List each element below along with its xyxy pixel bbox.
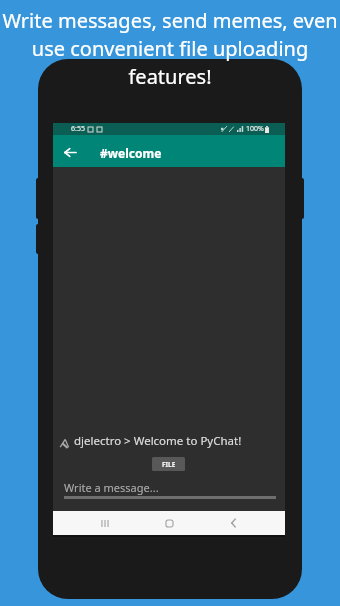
button[interactable]: FILE xyxy=(152,457,185,471)
button[interactable]: Back xyxy=(221,511,245,535)
button[interactable]: Home xyxy=(157,511,181,535)
staticText: Write a message... xyxy=(64,480,159,495)
staticText: #welcome xyxy=(100,145,162,161)
staticText: Write messages, send memes, even use con… xyxy=(0,7,340,90)
button[interactable]: Back xyxy=(53,135,285,167)
button[interactable]: Write a message... xyxy=(64,480,276,499)
button[interactable]: Back xyxy=(61,143,79,161)
staticText: 100% xyxy=(246,124,264,134)
button[interactable]: djelectro > Welcome to PyChat! xyxy=(59,433,242,449)
staticText: 6:55 xyxy=(71,124,85,134)
button[interactable]: Recents xyxy=(93,511,117,535)
staticText: djelectro > Welcome to PyChat! xyxy=(74,433,242,449)
staticText: FILE xyxy=(162,460,176,469)
